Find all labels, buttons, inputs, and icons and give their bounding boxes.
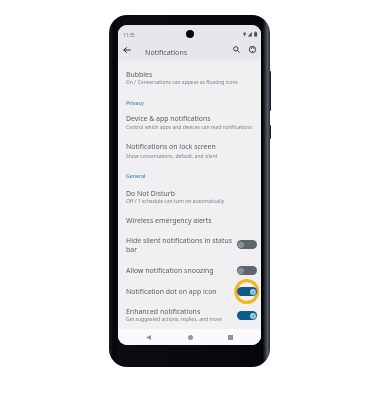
staticText: Wireless emergency alerts <box>126 216 212 225</box>
staticText: Hide silent notifications in status bar <box>126 236 233 254</box>
staticText: Notifications <box>145 47 188 57</box>
button[interactable]: Notifications on lock screen <box>118 139 261 161</box>
staticText: On / Conversations can appear as floatin… <box>126 79 238 86</box>
staticText: Get suggested actions, replies, and more <box>126 316 222 323</box>
button[interactable]: Enhanced notifications <box>118 304 261 325</box>
button[interactable]: Allow notification snoozing <box>118 263 261 281</box>
button[interactable]: Recents <box>223 330 237 344</box>
staticText: Device & app notifications <box>126 114 211 123</box>
button[interactable]: Back <box>119 42 135 58</box>
staticText: Enhanced notifications <box>126 307 201 316</box>
button[interactable]: Bubbles <box>118 67 261 87</box>
button[interactable]: Help <box>245 42 259 56</box>
staticText: 11:35 <box>123 32 135 38</box>
button[interactable]: Notification dot on app icon <box>118 284 261 302</box>
staticText: Bubbles <box>126 70 153 79</box>
button[interactable]: Do Not Disturb <box>118 186 261 207</box>
button[interactable]: Home <box>183 330 197 344</box>
staticText: Do Not Disturb <box>126 189 175 198</box>
staticText: Notification dot on app icon <box>126 287 217 296</box>
button[interactable]: Wireless emergency alerts <box>118 213 261 228</box>
staticText: Control which apps and devices can read … <box>126 124 252 131</box>
button[interactable]: Hide silent notifications in status bar <box>118 233 261 251</box>
staticText: Show conversations, default, and silent <box>126 153 218 160</box>
staticText: Off / 1 schedule can turn on automatical… <box>126 198 225 205</box>
staticText: Notifications on lock screen <box>126 142 216 151</box>
button[interactable]: Device & app notifications <box>118 111 261 132</box>
staticText: Privacy <box>126 99 144 106</box>
staticText: General <box>126 172 146 179</box>
button[interactable]: Search <box>229 42 243 56</box>
staticText: Allow notification snoozing <box>126 266 214 275</box>
button[interactable]: Back <box>141 330 155 344</box>
